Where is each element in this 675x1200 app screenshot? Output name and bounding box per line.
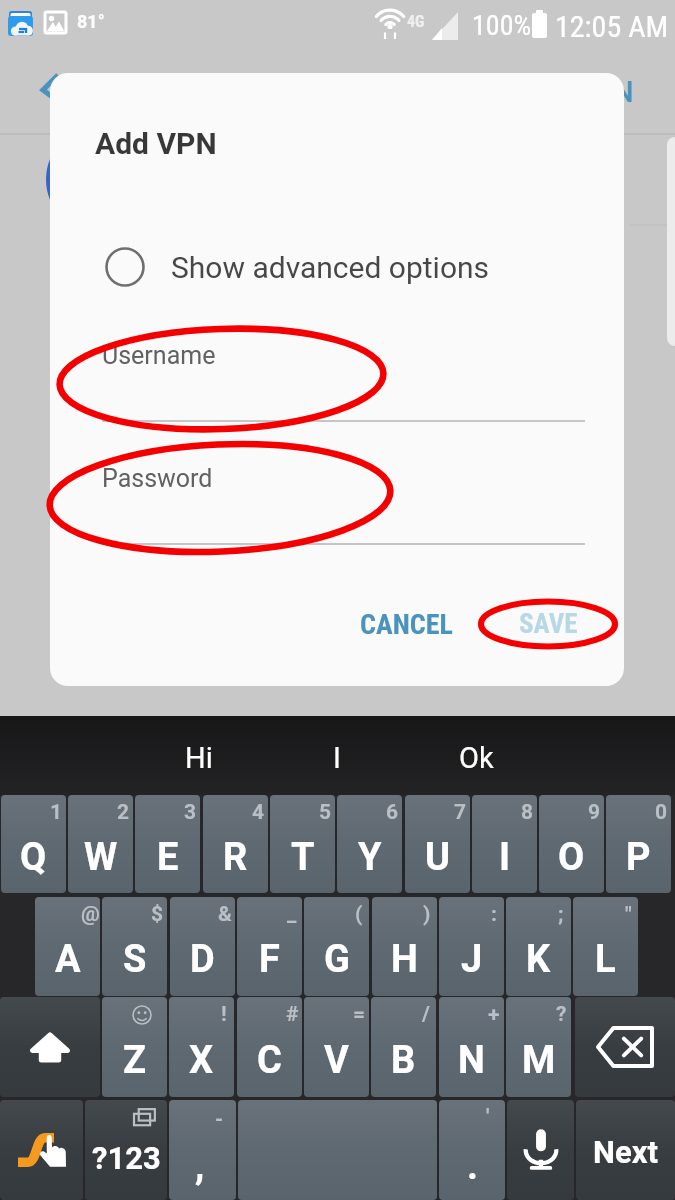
button[interactable]: F: [237, 897, 302, 996]
staticText: 0: [655, 800, 668, 825]
staticText: O: [558, 835, 585, 880]
button[interactable]: O: [539, 795, 604, 893]
button[interactable]: Q: [1, 795, 66, 893]
staticText: +: [488, 1002, 500, 1027]
button[interactable]: Next: [576, 1100, 675, 1200]
button[interactable]: Voice input: [507, 1100, 574, 1200]
staticText: 4: [252, 800, 265, 825]
staticText: C: [257, 1038, 282, 1083]
button[interactable]: .: [439, 1100, 505, 1200]
staticText: B: [391, 1038, 416, 1083]
staticText: /: [422, 1002, 430, 1027]
staticText: U: [425, 835, 451, 880]
button[interactable]: M: [506, 997, 571, 1097]
staticText: W: [84, 835, 118, 880]
staticText: 9: [588, 800, 601, 825]
staticText: 2: [117, 800, 130, 825]
staticText: S: [123, 937, 147, 982]
staticText: Next: [593, 1134, 658, 1170]
button[interactable]: K: [506, 897, 571, 996]
button[interactable]: R: [203, 795, 268, 893]
staticText: 12:05 AM: [555, 9, 669, 44]
button[interactable]: L: [573, 897, 638, 996]
button[interactable]: G: [304, 897, 369, 996]
other: Shift: [28, 1025, 72, 1069]
button[interactable]: W: [68, 795, 133, 893]
staticText: E: [157, 835, 179, 880]
button[interactable]: Ok: [416, 730, 536, 785]
button[interactable]: Shift: [0, 997, 100, 1097]
staticText: D: [190, 937, 215, 982]
staticText: I: [333, 741, 341, 775]
button[interactable]: B: [371, 997, 436, 1097]
button[interactable]: ?123: [85, 1100, 167, 1200]
button[interactable]: X: [169, 997, 234, 1097]
button[interactable]: H: [372, 897, 437, 996]
button[interactable]: Backspace: [575, 997, 675, 1097]
staticText: 100%: [472, 9, 532, 42]
button[interactable]: Y: [337, 795, 402, 893]
staticText: 6: [386, 800, 399, 825]
staticText: G: [324, 937, 350, 982]
button[interactable]: Password: [102, 463, 585, 546]
other: Voice input: [524, 1128, 558, 1172]
button[interactable]: E: [135, 795, 200, 893]
button[interactable]: ,: [169, 1100, 236, 1200]
staticText: -: [215, 1107, 224, 1132]
staticText: M: [522, 1038, 556, 1083]
staticText: ': [486, 1104, 490, 1129]
staticText: SAVE: [519, 608, 578, 640]
staticText: ?: [556, 1002, 567, 1027]
button[interactable]: C: [237, 997, 302, 1097]
staticText: #: [286, 1002, 299, 1027]
button[interactable]: S: [102, 897, 167, 996]
staticText: F: [259, 937, 280, 982]
staticText: A: [55, 937, 81, 982]
staticText: N: [613, 75, 634, 109]
staticText: .: [467, 1144, 479, 1189]
button[interactable]: SAVE: [500, 596, 596, 652]
button[interactable]: [238, 1100, 437, 1200]
button[interactable]: I: [277, 730, 397, 785]
staticText: Show advanced options: [171, 250, 490, 285]
button[interactable]: Username: [102, 340, 585, 423]
staticText: N: [458, 1038, 485, 1083]
button[interactable]: Show advanced options: [96, 241, 566, 293]
other: Backspace: [596, 1026, 654, 1068]
button[interactable]: P: [606, 795, 671, 893]
staticText: &: [218, 902, 232, 927]
staticText: P: [626, 835, 651, 880]
staticText: CANCEL: [360, 608, 453, 641]
other: Swipe input: [17, 1133, 67, 1167]
button[interactable]: U: [405, 795, 470, 893]
staticText: =: [353, 1002, 366, 1027]
button[interactable]: Hi: [139, 730, 259, 785]
staticText: L: [595, 937, 616, 982]
button[interactable]: N: [439, 997, 504, 1097]
staticText: Password: [102, 464, 213, 493]
staticText: _: [287, 902, 297, 927]
staticText: Username: [102, 341, 216, 370]
button[interactable]: I: [472, 795, 537, 893]
staticText: 7: [454, 800, 467, 825]
staticText: ,: [195, 1144, 205, 1189]
staticText: Ok: [459, 741, 494, 775]
button[interactable]: Swipe input: [0, 1100, 83, 1200]
button[interactable]: CANCEL: [344, 596, 468, 652]
staticText: !: [221, 1002, 227, 1027]
staticText: J: [461, 937, 483, 982]
button[interactable]: J: [439, 897, 504, 996]
staticText: (: [355, 902, 363, 927]
staticText: Z: [123, 1038, 147, 1083]
staticText: V: [324, 1038, 349, 1083]
staticText: 8: [521, 800, 534, 825]
staticText: ": [625, 902, 632, 927]
button[interactable]: D: [170, 897, 235, 996]
staticText: Hi: [185, 741, 213, 775]
staticText: 5: [319, 800, 332, 825]
button[interactable]: Z: [102, 997, 167, 1097]
button[interactable]: A: [35, 897, 100, 996]
button[interactable]: V: [304, 997, 369, 1097]
button[interactable]: T: [270, 795, 335, 893]
staticText: H: [391, 937, 418, 982]
